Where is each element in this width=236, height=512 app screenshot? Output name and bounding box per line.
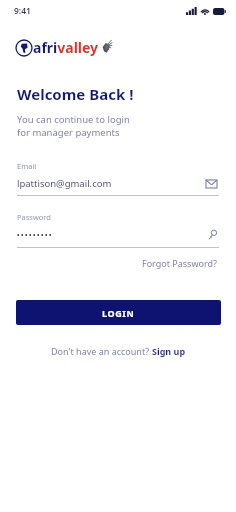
staticText: Welcome Back !: [17, 84, 134, 104]
staticText: You can continue to login for manager pa…: [17, 113, 130, 139]
button[interactable]: Show password: [206, 228, 219, 242]
button[interactable]: Email: [204, 178, 219, 190]
staticText: Forgot Password?: [142, 257, 217, 269]
staticText: afrivalley: [33, 38, 99, 57]
staticText: Sign up: [152, 345, 186, 357]
staticText: lpattison@gmail.com: [17, 177, 204, 190]
staticText: Email: [17, 161, 37, 171]
button[interactable]: Don't have an account?: [51, 345, 186, 357]
staticText: LOGIN: [102, 307, 135, 319]
staticText: 9:41: [14, 5, 31, 17]
staticText: Password: [17, 212, 51, 222]
button[interactable]: Forgot Password?: [140, 255, 219, 271]
staticText: Don't have an account?: [51, 345, 152, 357]
button[interactable]: LOGIN: [16, 300, 221, 325]
